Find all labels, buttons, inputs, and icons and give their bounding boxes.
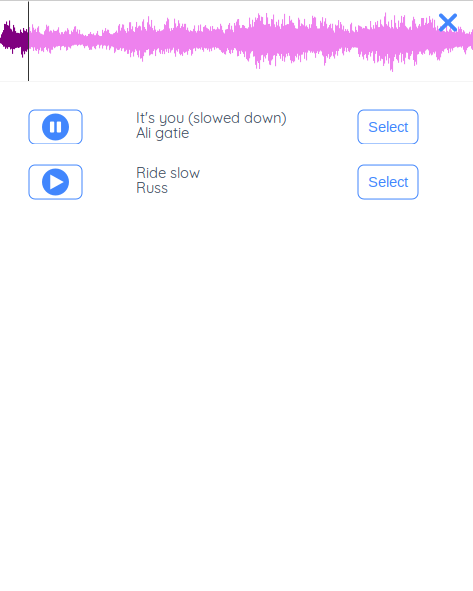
staticText: Russ — [136, 178, 168, 197]
button[interactable]: Play — [29, 165, 82, 199]
staticText: Ride slow — [136, 163, 200, 182]
button[interactable]: Pause — [29, 110, 82, 144]
button[interactable]: Select — [358, 165, 418, 199]
button[interactable]: Select — [358, 110, 418, 144]
staticText: Select — [368, 119, 408, 135]
staticText: Ali gatie — [136, 123, 189, 142]
button[interactable]: Close — [436, 10, 460, 34]
staticText: Select — [368, 174, 408, 190]
staticText: It's you (slowed down) — [136, 108, 286, 127]
